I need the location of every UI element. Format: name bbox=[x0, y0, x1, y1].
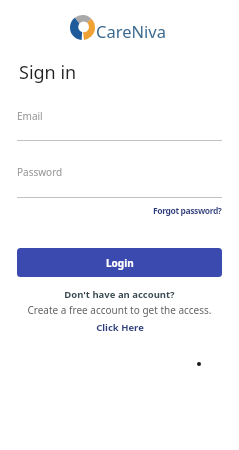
staticText: Password bbox=[17, 165, 63, 179]
staticText: Email bbox=[17, 109, 43, 123]
staticText: Login bbox=[106, 256, 134, 270]
button[interactable]: Login bbox=[17, 248, 222, 277]
button[interactable]: Forgot password? bbox=[153, 205, 222, 217]
staticText: Sign in bbox=[19, 60, 77, 85]
staticText: Don't have an account? bbox=[64, 288, 175, 301]
button[interactable]: Password bbox=[17, 161, 222, 198]
button[interactable]: Email bbox=[17, 105, 222, 141]
staticText: Create a free account to get the access. bbox=[27, 303, 212, 317]
button[interactable]: Click Here bbox=[96, 321, 144, 334]
staticText: CareNiva bbox=[96, 20, 166, 42]
